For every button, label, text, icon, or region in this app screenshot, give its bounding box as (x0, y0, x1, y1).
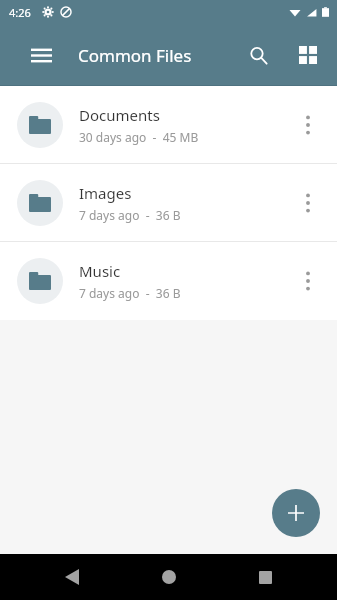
staticText: Images (79, 183, 132, 203)
staticText: Music (79, 261, 121, 281)
button[interactable]: Home (144, 554, 194, 600)
staticText: 7 days ago - 36 B (79, 285, 181, 301)
button[interactable]: Add (272, 489, 320, 537)
button[interactable]: Documents (0, 86, 337, 163)
button[interactable]: More options (285, 258, 331, 304)
button[interactable]: Grid view (285, 32, 331, 78)
staticText: Common Files (78, 44, 192, 67)
staticText: 30 days ago - 45 MB (79, 129, 199, 145)
button[interactable]: Images (0, 164, 337, 241)
button[interactable]: More options (285, 102, 331, 148)
staticText: 7 days ago - 36 B (79, 207, 181, 223)
button[interactable]: Search (235, 32, 281, 78)
button[interactable]: Open navigation drawer (18, 32, 64, 78)
staticText: 4:26 (9, 5, 31, 20)
button[interactable]: Music (0, 242, 337, 319)
button[interactable]: Recent apps (240, 554, 290, 600)
button[interactable]: More options (285, 180, 331, 226)
button[interactable]: Back (47, 554, 97, 600)
staticText: Documents (79, 105, 160, 125)
